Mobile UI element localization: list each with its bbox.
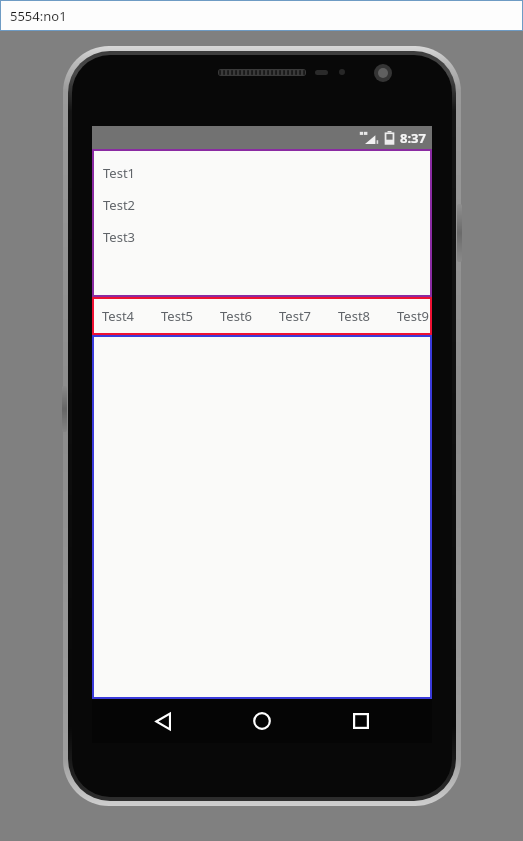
staticText: Test9 (397, 307, 430, 325)
button[interactable]: Test1 (103, 164, 432, 182)
other: 3G signal (359, 131, 379, 145)
staticText: 5554:no1 (10, 7, 67, 25)
staticText: Test3 (103, 228, 136, 246)
staticText: Test1 (103, 164, 136, 182)
staticText: Test6 (220, 307, 253, 325)
button[interactable]: Test2 (103, 196, 432, 214)
staticText: Test7 (279, 307, 312, 325)
other: Battery (384, 131, 395, 145)
staticText: Test2 (103, 196, 136, 214)
button[interactable]: Home (234, 699, 290, 743)
button[interactable]: Test3 (103, 228, 432, 246)
button[interactable]: Test4 (102, 307, 161, 325)
staticText: Test5 (161, 307, 194, 325)
staticText: 8:37 (400, 129, 426, 147)
staticText: Test8 (338, 307, 371, 325)
button[interactable]: Test7 (279, 307, 338, 325)
button[interactable]: Test6 (220, 307, 279, 325)
button[interactable]: Test5 (161, 307, 220, 325)
button[interactable]: Test9 (397, 307, 432, 325)
button[interactable]: Test8 (338, 307, 397, 325)
staticText: Test4 (102, 307, 135, 325)
button[interactable]: Recent apps (333, 699, 389, 743)
button[interactable]: Back (135, 699, 191, 743)
